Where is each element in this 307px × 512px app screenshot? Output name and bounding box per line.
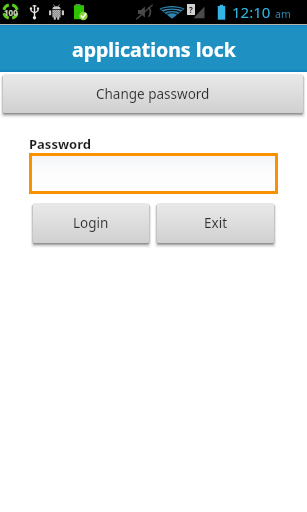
staticText: Change password [96,85,210,103]
staticText: 100 [4,7,18,18]
button[interactable]: Login [33,203,149,243]
staticText: Login [73,214,109,232]
staticText: Password [29,135,91,153]
staticText: Exit [204,214,228,232]
button[interactable]: Change password [3,74,303,113]
button[interactable]: Exit [157,203,274,243]
staticText: am [275,7,291,21]
button[interactable]: Password input field [29,153,278,194]
staticText: 12:10 [232,2,271,22]
staticText: applications lock [72,36,236,63]
staticText: ? [189,4,193,15]
